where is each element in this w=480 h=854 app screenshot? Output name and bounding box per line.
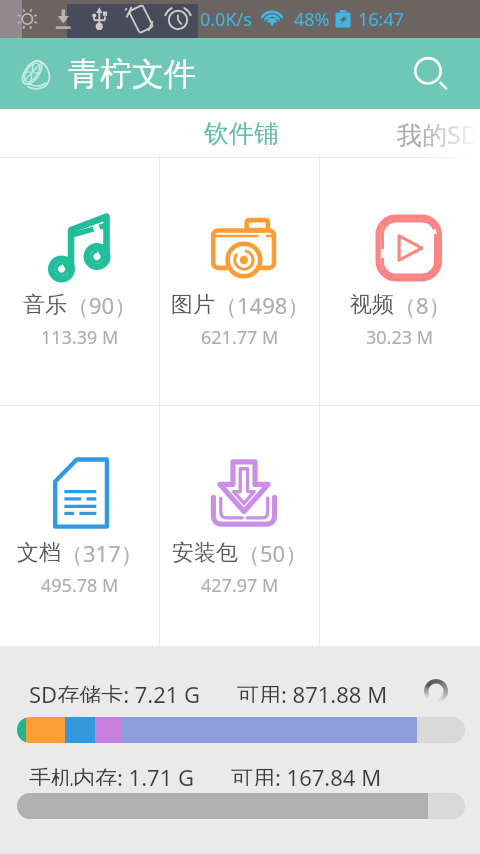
staticText: 16:47 — [358, 7, 405, 32]
staticText: （8） — [394, 290, 451, 320]
staticText: 安装包 — [172, 539, 238, 567]
button[interactable]: 安装包 — [160, 406, 320, 646]
button[interactable]: 音乐 — [0, 158, 160, 405]
staticText: 可用: 167.84 M — [231, 762, 382, 786]
staticText: 图片 — [171, 291, 215, 319]
staticText: 钦件铺 — [204, 118, 279, 149]
button[interactable]: 图片 — [160, 158, 320, 405]
button[interactable]: 文档 — [0, 406, 160, 646]
staticText: 48% — [294, 7, 330, 32]
staticText: 427.97 M — [201, 573, 279, 598]
staticText: 621.77 M — [201, 325, 279, 350]
staticText: （1498） — [215, 290, 310, 320]
staticText: （50） — [238, 538, 308, 568]
staticText: 视频 — [350, 291, 394, 319]
staticText: 113.39 M — [41, 325, 119, 350]
button[interactable]: 我的SD卡 — [397, 109, 480, 158]
button[interactable]: Search — [408, 50, 456, 98]
button[interactable]: 视频 — [320, 158, 480, 405]
staticText: 青柠文件 — [68, 54, 196, 94]
staticText: 可用: 871.88 M — [237, 679, 388, 703]
staticText: 我的SD卡 — [397, 117, 480, 151]
staticText: SD存储卡: 7.21 G — [29, 679, 201, 703]
staticText: （317） — [61, 538, 143, 568]
button[interactable]: 钦件铺 — [203, 109, 279, 158]
staticText: 手机内存: 1.71 G — [29, 762, 195, 786]
staticText: 文档 — [17, 539, 61, 567]
staticText: 30.23 M — [366, 325, 434, 350]
staticText: 495.78 M — [41, 573, 119, 598]
staticText: （90） — [67, 290, 137, 320]
staticText: 音乐 — [23, 291, 67, 319]
staticText: 0.0K/s — [200, 7, 252, 32]
